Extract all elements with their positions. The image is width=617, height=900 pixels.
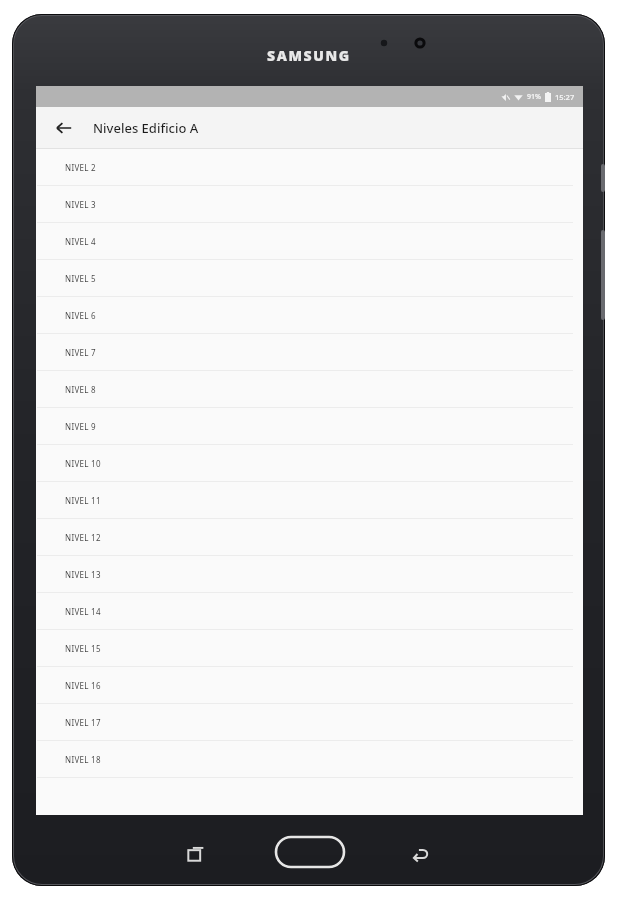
button[interactable]: NIVEL 3 [36,186,583,223]
staticText: NIVEL 18 [65,754,101,765]
staticText: NIVEL 4 [65,236,96,247]
staticText: NIVEL 15 [65,643,101,654]
button[interactable]: NIVEL 9 [36,408,583,445]
staticText: NIVEL 6 [65,310,96,321]
staticText: NIVEL 9 [65,421,96,432]
button[interactable]: NIVEL 2 [36,149,583,186]
staticText: NIVEL 3 [65,199,96,210]
staticText: NIVEL 14 [65,606,101,617]
staticText: NIVEL 7 [65,347,96,358]
button[interactable]: NIVEL 7 [36,334,583,371]
staticText: SAMSUNG [267,46,351,65]
staticText: NIVEL 11 [65,495,101,506]
staticText: 91% [527,92,541,102]
staticText: NIVEL 2 [65,162,96,173]
button[interactable]: Navigate up [48,112,80,144]
button[interactable]: NIVEL 8 [36,371,583,408]
staticText: NIVEL 12 [65,532,101,543]
button[interactable]: Home [272,832,348,872]
staticText: 15:27 [555,92,575,102]
button[interactable]: NIVEL 14 [36,593,583,630]
button[interactable]: NIVEL 17 [36,704,583,741]
button[interactable]: NIVEL 15 [36,630,583,667]
staticText: Niveles Edificio A [93,119,199,137]
button[interactable]: NIVEL 4 [36,223,583,260]
staticText: NIVEL 8 [65,384,96,395]
button[interactable]: NIVEL 11 [36,482,583,519]
button[interactable]: Recent apps [178,836,214,872]
staticText: NIVEL 10 [65,458,101,469]
staticText: NIVEL 17 [65,717,101,728]
staticText: NIVEL 16 [65,680,101,691]
button[interactable]: NIVEL 10 [36,445,583,482]
button[interactable]: NIVEL 16 [36,667,583,704]
button[interactable]: NIVEL 5 [36,260,583,297]
staticText: NIVEL 13 [65,569,101,580]
button[interactable]: Back [402,836,438,872]
button[interactable]: NIVEL 12 [36,519,583,556]
staticText: NIVEL 5 [65,273,96,284]
button[interactable]: NIVEL 6 [36,297,583,334]
button[interactable]: NIVEL 13 [36,556,583,593]
button[interactable]: NIVEL 18 [36,741,583,778]
